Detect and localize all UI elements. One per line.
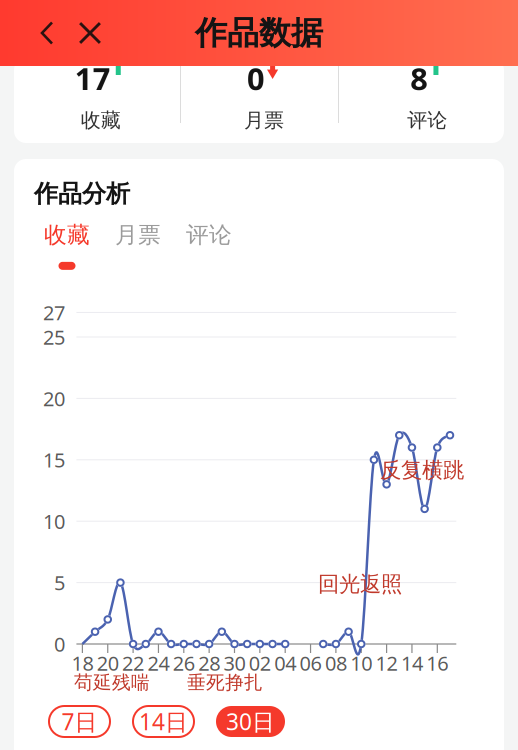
- staticText: 10: [350, 650, 372, 676]
- staticText: 04: [274, 650, 296, 676]
- button[interactable]: 14日: [132, 705, 195, 738]
- staticText: 12: [376, 650, 398, 676]
- staticText: 28: [198, 650, 220, 676]
- staticText: 月票: [115, 221, 161, 249]
- staticText: 08: [325, 650, 347, 676]
- staticText: 14: [401, 650, 423, 676]
- staticText: 27: [43, 299, 65, 326]
- staticText: 8: [410, 58, 428, 99]
- staticText: 反复横跳: [380, 457, 464, 483]
- button[interactable]: 月票: [115, 221, 161, 270]
- button[interactable]: 30日: [216, 706, 285, 737]
- staticText: 20: [97, 650, 119, 676]
- staticText: 16: [426, 650, 448, 676]
- staticText: 02: [249, 650, 271, 676]
- staticText: 苟延残喘: [74, 671, 150, 694]
- staticText: 作品数据: [195, 13, 323, 53]
- staticText: 20: [43, 385, 65, 412]
- staticText: 15: [43, 446, 65, 473]
- staticText: 30日: [226, 706, 275, 736]
- staticText: 25: [43, 324, 65, 350]
- staticText: 评论: [407, 108, 447, 133]
- button[interactable]: 收藏: [44, 221, 90, 270]
- staticText: 26: [173, 650, 195, 676]
- staticText: 18: [71, 650, 93, 676]
- staticText: 月票: [244, 108, 284, 133]
- staticText: 24: [147, 650, 169, 676]
- staticText: 5: [54, 569, 65, 596]
- staticText: 收藏: [44, 221, 90, 249]
- staticText: 0: [247, 58, 265, 99]
- button[interactable]: 评论: [186, 221, 232, 270]
- staticText: 30: [223, 650, 245, 676]
- button[interactable]: 返回: [34, 0, 60, 66]
- staticText: 14日: [139, 706, 188, 736]
- staticText: 垂死挣扎: [187, 671, 263, 694]
- button[interactable]: 关闭: [76, 0, 104, 66]
- staticText: 0: [54, 631, 65, 657]
- staticText: 回光返照: [318, 571, 402, 597]
- staticText: 收藏: [81, 108, 121, 133]
- staticText: 7日: [61, 706, 97, 736]
- staticText: 评论: [186, 221, 232, 249]
- staticText: 17: [75, 58, 111, 99]
- staticText: 22: [122, 650, 144, 676]
- staticText: 10: [43, 508, 65, 534]
- staticText: 作品分析: [34, 179, 130, 208]
- button[interactable]: 7日: [48, 705, 111, 738]
- staticText: 06: [300, 650, 322, 676]
